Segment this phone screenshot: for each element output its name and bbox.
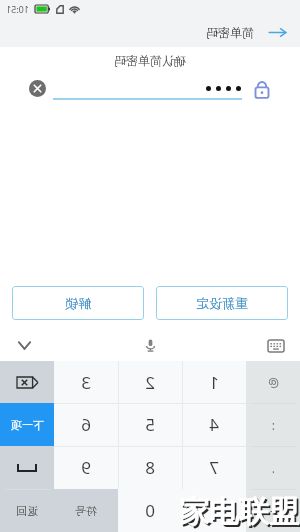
staticText: 4 [209, 413, 219, 436]
staticText: 2 [145, 371, 155, 394]
button[interactable]: 下一项 [0, 403, 54, 446]
staticText: 符号 [75, 504, 97, 518]
other: Back [268, 23, 287, 42]
staticText: 1 [209, 371, 219, 394]
staticText: 解锁 [65, 295, 91, 311]
staticText: 10:51 [5, 3, 29, 15]
button[interactable]: . [246, 446, 300, 489]
button[interactable]: Space [0, 446, 54, 489]
staticText: 简单密码 [206, 25, 254, 40]
button[interactable]: Hide keyboard [0, 330, 48, 361]
button[interactable]: 符号 [54, 489, 118, 532]
button[interactable]: 6 [54, 403, 118, 446]
button[interactable]: 解锁 [12, 286, 144, 320]
button[interactable]: 4 [182, 403, 246, 446]
staticText: 7 [209, 456, 219, 479]
button[interactable]: 0 [118, 489, 246, 532]
staticText: 5 [145, 413, 155, 436]
button[interactable]: Voice input [130, 330, 170, 361]
staticText: 家电联盟 [179, 493, 299, 531]
button[interactable]: 2 [118, 361, 182, 403]
staticText: 重新设定 [196, 295, 248, 311]
button[interactable]: 简单密码 [198, 23, 295, 42]
staticText: 下一项 [11, 418, 44, 432]
button[interactable]: 3 [54, 361, 118, 403]
button[interactable]: 9 [54, 446, 118, 489]
staticText: 家电联盟 [181, 495, 300, 532]
staticText: 3 [81, 371, 91, 394]
staticText: 6 [81, 413, 91, 436]
button[interactable]: 1 [182, 361, 246, 403]
staticText: 返回 [16, 504, 38, 518]
button[interactable]: Backspace [0, 361, 54, 403]
button[interactable]: 返回 [0, 489, 54, 532]
staticText: 8 [145, 456, 155, 479]
staticText: 0 [145, 499, 155, 522]
button[interactable]: : [246, 403, 300, 446]
button[interactable]: 重新设定 [156, 286, 288, 320]
button[interactable]: Clear [29, 80, 46, 97]
staticText: 9 [81, 456, 91, 479]
staticText: 确认简单密码 [114, 53, 186, 68]
button[interactable]: 5 [118, 403, 182, 446]
button[interactable]: 7 [182, 446, 246, 489]
staticText: + [269, 502, 277, 520]
button[interactable]: + [246, 489, 300, 532]
button[interactable]: Show password [252, 78, 272, 98]
staticText: : [271, 417, 275, 433]
staticText: . [271, 460, 275, 476]
button[interactable]: Switch keyboard [252, 330, 300, 361]
button[interactable]: At sign [246, 361, 300, 403]
button[interactable]: 8 [118, 446, 182, 489]
staticText: @ [268, 374, 279, 390]
